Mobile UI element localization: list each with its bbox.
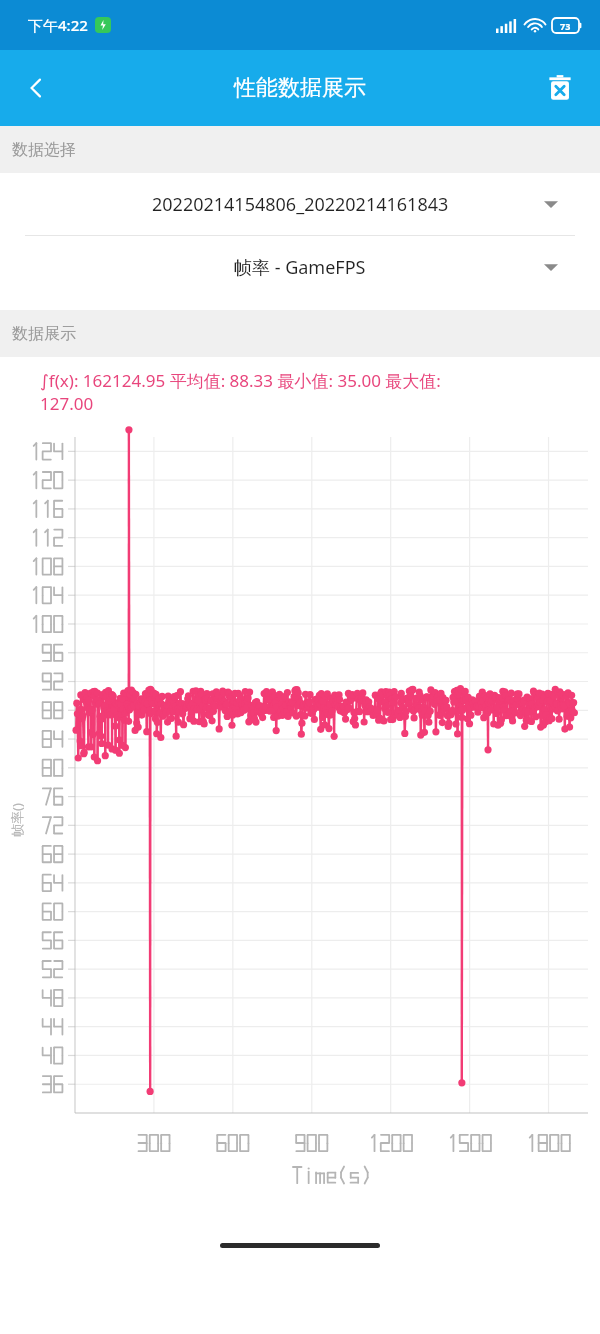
staticText: ∫f(x): 162124.95 平均值: 88.33 最小值: 35.00 最… [40, 369, 441, 392]
staticText: 127.00 [40, 392, 94, 415]
button[interactable]: Delete [532, 60, 588, 116]
staticText: 数据展示 [12, 324, 76, 344]
staticText: 下午4:22 [28, 15, 88, 35]
button[interactable]: Back [8, 60, 64, 116]
button[interactable]: 帧率 - GameFPS [0, 236, 600, 298]
staticText: 20220214154806_20220214161843 [152, 192, 449, 217]
button[interactable]: 20220214154806_20220214161843 [0, 173, 600, 235]
staticText: 数据选择 [12, 140, 76, 160]
staticText: 帧率() [8, 803, 26, 837]
staticText: 性能数据展示 [234, 74, 366, 102]
staticText: 帧率 - GameFPS [234, 255, 366, 280]
staticText: 73 [560, 20, 571, 32]
